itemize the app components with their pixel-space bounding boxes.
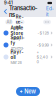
staticText: Edit [46, 6, 54, 17]
button[interactable]: More options [43, 20, 51, 24]
staticText: Today [10, 36, 20, 41]
staticText: Spotify [10, 35, 24, 46]
button[interactable]: Apple Store [0, 27, 56, 39]
button[interactable]: New [16, 87, 40, 96]
button[interactable]: Back [2, 7, 9, 16]
staticText: Apple Store [10, 25, 23, 36]
button[interactable]: Spotify [0, 39, 56, 51]
button[interactable]: Edit [46, 7, 54, 16]
staticText: New [24, 88, 36, 95]
staticText: Payroll [10, 49, 23, 60]
staticText: Recent [16, 14, 24, 30]
staticText: Mar 28 [10, 60, 21, 65]
button[interactable]: All [5, 20, 13, 24]
button[interactable]: Recent [15, 20, 24, 24]
staticText: 9:41 [4, 0, 13, 6]
button[interactable]: Payroll [0, 51, 56, 63]
staticText: Yesterday [10, 46, 23, 55]
staticText: All [6, 19, 11, 25]
staticText: +$2,400 [36, 50, 48, 64]
staticText: Transactions [9, 5, 37, 18]
staticText: -$128 [37, 31, 48, 35]
staticText: -$9.99 [36, 43, 48, 47]
